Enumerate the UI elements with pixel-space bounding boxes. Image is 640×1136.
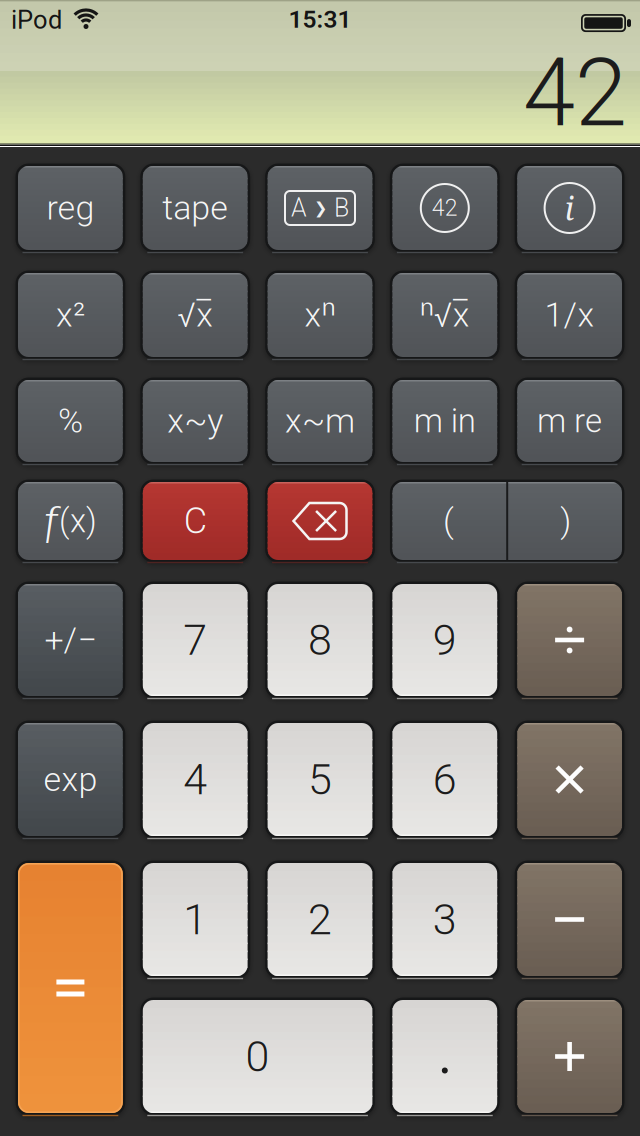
button[interactable]: ( [390,479,507,562]
button[interactable]: xⁿ [265,270,375,359]
button[interactable]: Convert A to B [265,163,375,252]
button[interactable]: 7 [140,581,250,698]
button[interactable]: + [515,997,624,1115]
button[interactable]: reg [15,163,125,252]
staticText: 42 [432,194,458,221]
staticText: i [565,186,575,230]
button[interactable]: x~m [265,377,375,464]
staticText: 0 [246,1031,270,1082]
staticText: 3 [433,894,457,945]
button[interactable]: 8 [265,581,375,698]
staticText: ( [443,501,454,541]
button[interactable]: 2 [265,860,375,978]
button[interactable]: +/− [15,581,125,698]
staticText: ❯ [314,199,327,217]
button[interactable]: 3 [390,860,500,978]
button[interactable]: 6 [390,720,500,838]
button[interactable]: 5 [265,720,375,838]
button[interactable]: ) [507,479,624,562]
staticText: 6 [433,754,457,805]
button[interactable]: √x̅ [140,270,250,359]
staticText: m in [414,402,476,440]
staticText: x² [56,295,85,335]
button[interactable]: 1 [140,860,250,978]
button[interactable]: x² [15,270,125,359]
staticText: ⁿ√x̅ [420,295,470,335]
button[interactable]: = [15,860,125,1115]
staticText: 4 [183,754,207,805]
button[interactable]: ÷ [515,581,624,698]
staticText: xⁿ [304,295,335,335]
button[interactable]: 42 [390,163,500,252]
button[interactable]: × [515,720,624,838]
staticText: m re [537,402,602,440]
staticText: √x̅ [177,295,213,335]
staticText: exp [43,760,97,799]
staticText: iPod [11,5,62,35]
button[interactable]: 1/x [515,270,624,359]
staticText: 1 [183,894,207,945]
staticText: ) [560,501,571,541]
button[interactable]: − [515,860,624,978]
staticText: reg [46,188,94,228]
button[interactable]: 4 [140,720,250,838]
staticText: 1/x [545,295,595,335]
button[interactable]: 0 [140,997,375,1115]
staticText: tape [162,188,228,228]
staticText: 2 [308,894,332,945]
button[interactable]: Info [515,163,624,252]
staticText: 9 [433,615,457,665]
button[interactable]: % [15,377,125,464]
staticText: A [291,193,307,223]
button[interactable]: Clear [140,479,250,562]
button[interactable]: m re [515,377,624,464]
button[interactable]: 9 [390,581,500,698]
button[interactable]: tape [140,163,250,252]
button[interactable]: Backspace [265,479,375,562]
staticText: % [58,401,83,441]
staticText: +/− [44,620,96,660]
staticText: x~m [285,401,355,441]
staticText: 5 [308,754,332,805]
button[interactable]: ⁿ√x̅ [390,270,500,359]
staticText: 42 [523,38,627,148]
staticText: x~y [167,401,223,441]
button[interactable]: . [390,997,500,1115]
staticText: f [44,499,58,543]
staticText: 15:31 [288,5,351,34]
staticText: B [334,193,349,223]
staticText: 7 [183,615,207,665]
button[interactable]: m in [390,377,500,464]
staticText: C [184,500,207,542]
staticText: 8 [308,615,332,665]
button[interactable]: f(x) [15,479,125,562]
button[interactable]: exp [15,720,125,838]
button[interactable]: x~y [140,377,250,464]
staticText: (x) [59,502,97,540]
